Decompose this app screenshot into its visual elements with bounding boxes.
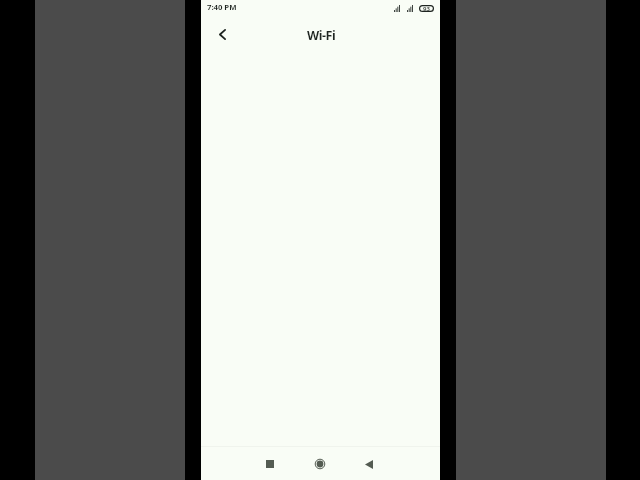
staticText: 7:40 PM — [207, 2, 237, 13]
staticText: Wi-Fi — [307, 27, 336, 44]
staticText: 93 — [423, 5, 430, 12]
button[interactable]: Home — [307, 451, 333, 477]
button[interactable]: Back — [356, 451, 382, 477]
button[interactable]: Recent apps — [257, 451, 283, 477]
button[interactable]: Back — [211, 23, 234, 46]
